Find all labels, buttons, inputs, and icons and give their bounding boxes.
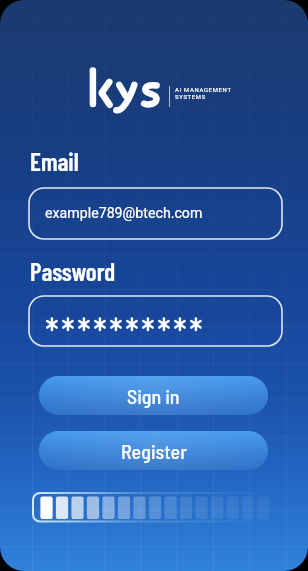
button[interactable]: Sign in xyxy=(39,376,268,415)
staticText: Sign in xyxy=(127,384,180,408)
staticText: AI MANAGEMENT xyxy=(175,87,232,94)
button[interactable] xyxy=(28,295,283,347)
staticText: Password xyxy=(30,256,116,286)
button[interactable]: Register xyxy=(39,431,268,470)
staticText: example789@btech.com xyxy=(45,205,203,222)
staticText: SYSTEMS xyxy=(175,94,206,101)
staticText: Email xyxy=(30,146,79,176)
staticText: Register xyxy=(121,439,187,463)
button[interactable]: example789@btech.com xyxy=(28,187,283,240)
